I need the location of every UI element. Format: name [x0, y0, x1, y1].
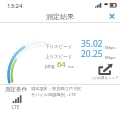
staticText: 上りスピード: [45, 54, 73, 60]
staticText: モバイル回線種別：LTE: [31, 92, 76, 98]
staticText: この結果をシェア: [91, 76, 119, 80]
staticText: 13:24: [7, 2, 23, 10]
staticText: 測定条件: [5, 86, 27, 93]
staticText: 64: [57, 59, 66, 69]
staticText: 下りスピード: [45, 44, 73, 50]
staticText: 20.25: [81, 48, 103, 60]
staticText: 測定場所：東京都江戸川区: [31, 86, 82, 91]
staticText: 測定結果: [46, 12, 74, 21]
staticText: 35.02: [81, 38, 103, 50]
staticText: ms: [68, 64, 74, 69]
staticText: ping: [45, 63, 55, 69]
staticText: LTE: [12, 104, 20, 110]
button[interactable]: この結果をシェア: [91, 63, 119, 80]
staticText: Mbps: [105, 55, 116, 60]
staticText: Mbps: [105, 45, 116, 50]
button[interactable]: Close: [107, 11, 117, 21]
